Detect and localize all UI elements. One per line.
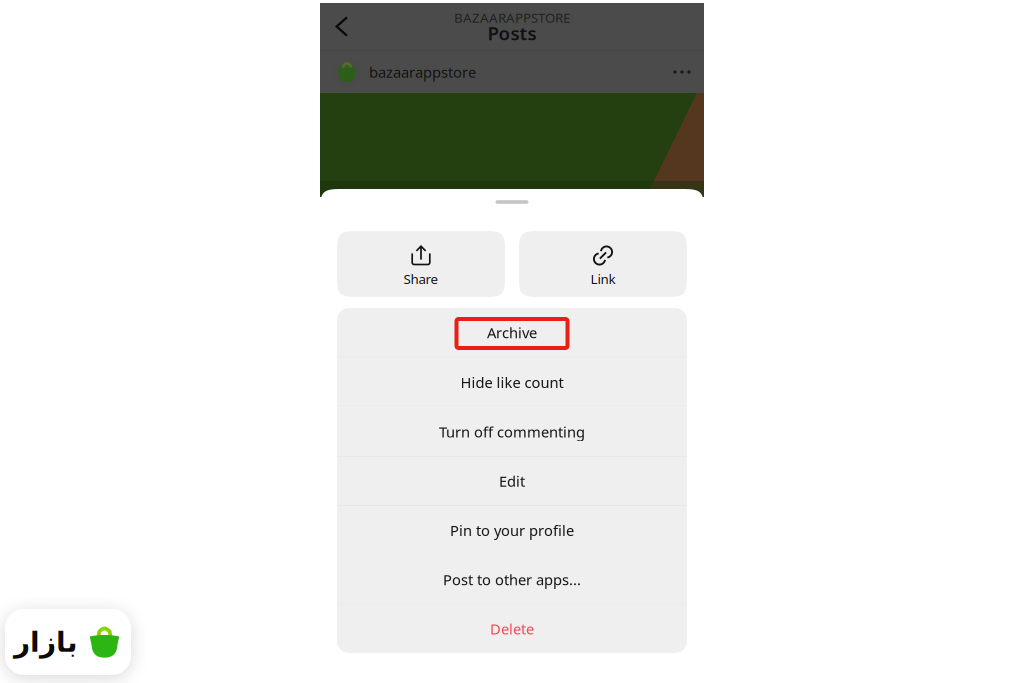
button[interactable]: Archive — [337, 308, 687, 357]
button[interactable]: More options — [662, 51, 702, 93]
staticText: bazaarappstore — [369, 62, 476, 82]
staticText: Share — [403, 270, 438, 288]
staticText: Archive — [487, 323, 537, 342]
staticText: Turn off commenting — [439, 422, 585, 441]
staticText: BAZAARAPPSTORE — [454, 9, 570, 26]
staticText: Pin to your profile — [450, 521, 574, 540]
staticText: Edit — [499, 471, 525, 491]
staticText: Post to other apps... — [443, 570, 581, 589]
button[interactable]: Turn off commenting — [337, 406, 687, 456]
staticText: Link — [590, 270, 615, 288]
staticText: Delete — [490, 619, 534, 639]
button[interactable]: Share — [337, 231, 505, 297]
button[interactable]: Back — [321, 3, 363, 50]
button[interactable]: Edit — [337, 456, 687, 505]
button[interactable]: Link — [519, 231, 687, 297]
staticText: Posts — [487, 21, 536, 45]
button[interactable]: Hide like count — [337, 357, 687, 406]
button[interactable]: Post to other apps... — [337, 554, 687, 604]
staticText: بازار — [13, 626, 77, 658]
button[interactable]: Pin to your profile — [337, 505, 687, 554]
button[interactable]: Delete — [337, 604, 687, 653]
staticText: Hide like count — [460, 373, 563, 392]
